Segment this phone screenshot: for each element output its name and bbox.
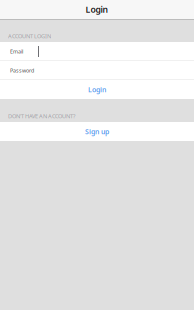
button[interactable]: Email: [0, 42, 194, 61]
staticText: ACCOUNT LOGIN: [8, 32, 51, 40]
staticText: Login: [88, 85, 106, 94]
button[interactable]: Password: [0, 61, 194, 80]
button[interactable]: Login: [0, 80, 194, 99]
staticText: Sign up: [85, 127, 109, 136]
staticText: DON'T HAVE AN ACCOUNT?: [8, 112, 75, 120]
staticText: Password: [10, 67, 34, 74]
button[interactable]: Sign up: [0, 122, 194, 141]
staticText: Login: [85, 4, 108, 15]
staticText: Email: [10, 48, 23, 55]
